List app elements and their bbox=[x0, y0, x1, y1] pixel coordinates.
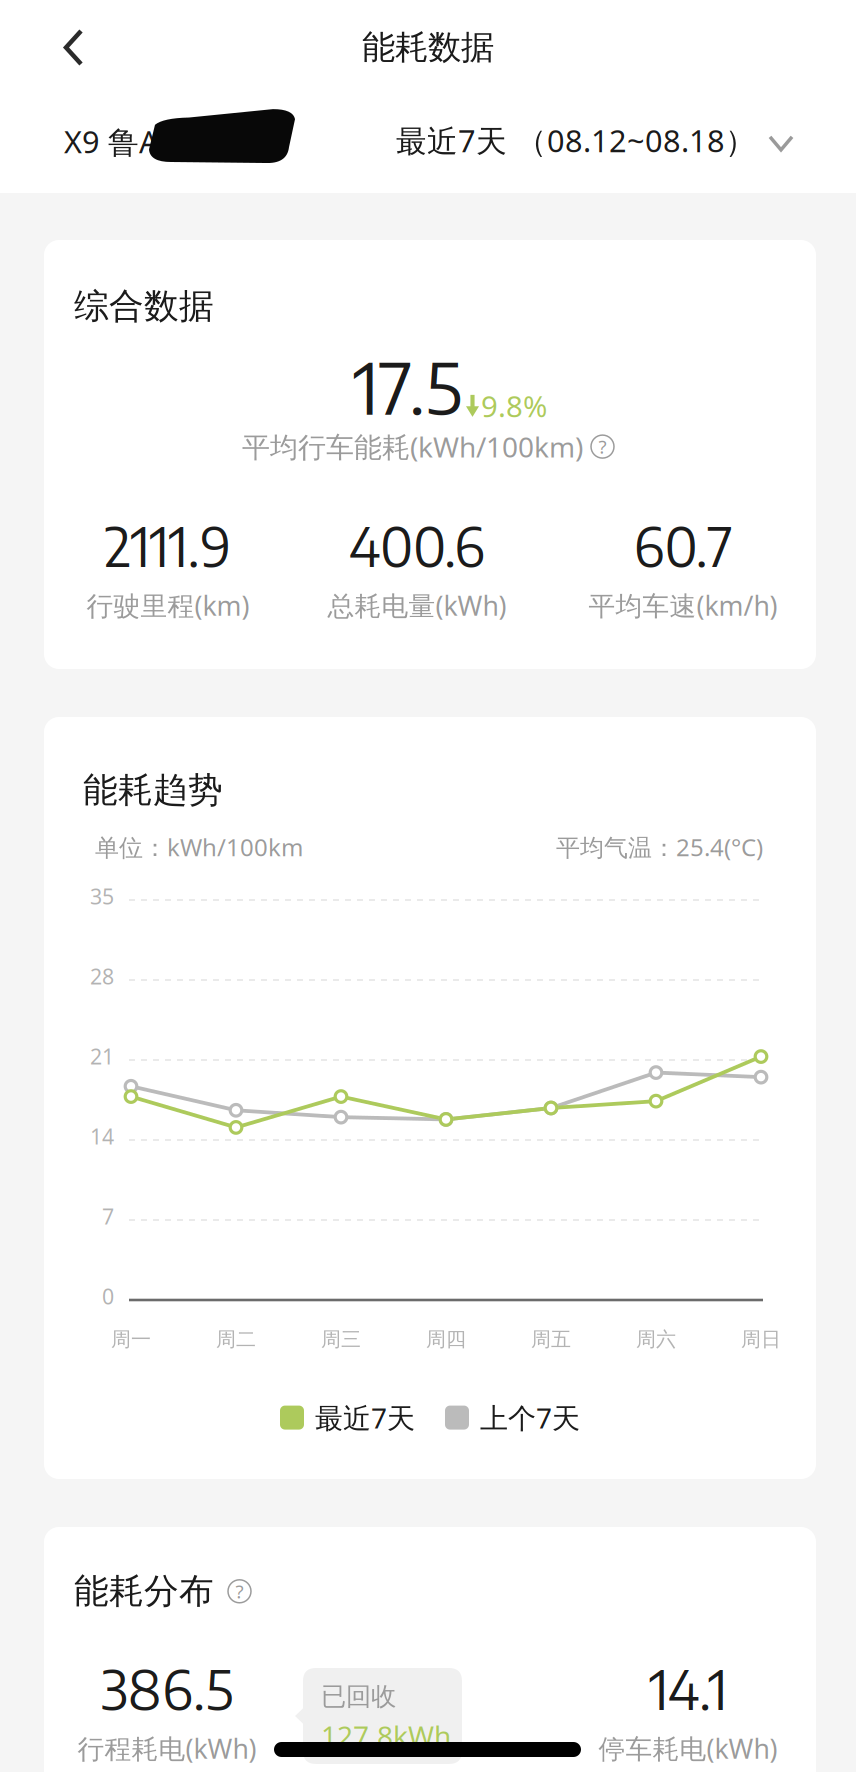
staticText: 能耗数据 bbox=[362, 27, 494, 68]
button[interactable]: 返回 bbox=[48, 14, 99, 81]
staticText: 单位：kWh/100km bbox=[95, 831, 303, 863]
staticText: 周四 bbox=[426, 1327, 466, 1352]
staticText: 周五 bbox=[531, 1327, 571, 1352]
staticText: 9.8% bbox=[481, 386, 547, 425]
staticText: 7 bbox=[102, 1202, 114, 1230]
button[interactable]: 最近7天 （08.12~08.18） bbox=[396, 106, 792, 175]
staticText: 28 bbox=[90, 962, 114, 990]
staticText: 周六 bbox=[636, 1327, 676, 1352]
staticText: 周三 bbox=[321, 1327, 361, 1352]
staticText: 综合数据 bbox=[74, 285, 214, 328]
staticText: 21 bbox=[90, 1042, 114, 1070]
staticText: 0 bbox=[102, 1282, 114, 1310]
staticText: 400.6 bbox=[349, 512, 485, 579]
staticText: 17.5 bbox=[353, 342, 462, 430]
staticText: 行驶里程(km) bbox=[86, 588, 249, 623]
staticText: 总耗电量(kWh) bbox=[327, 588, 506, 623]
staticText: 平均行车能耗(kWh/100km) bbox=[242, 428, 583, 465]
staticText: 已回收 bbox=[321, 1681, 396, 1712]
staticText: 2111.9 bbox=[104, 512, 231, 579]
staticText: 行程耗电(kWh) bbox=[77, 1731, 256, 1766]
staticText: 平均车速(km/h) bbox=[588, 588, 777, 623]
staticText: 能耗趋势 bbox=[83, 769, 223, 812]
staticText: ? bbox=[598, 434, 606, 459]
staticText: 上个7天 bbox=[480, 1399, 580, 1436]
staticText: 最近7天 （08.12~08.18） bbox=[396, 120, 756, 161]
staticText: 386.5 bbox=[101, 1655, 233, 1722]
staticText: 14.1 bbox=[649, 1655, 727, 1722]
staticText: 周一 bbox=[111, 1327, 151, 1352]
staticText: 周日 bbox=[741, 1327, 781, 1352]
staticText: 60.7 bbox=[633, 512, 732, 579]
button[interactable]: X9 鲁A bbox=[50, 108, 300, 166]
staticText: 周二 bbox=[216, 1327, 256, 1352]
staticText: 127.8kWh bbox=[321, 1717, 451, 1754]
staticText: 14 bbox=[90, 1122, 114, 1150]
staticText: 能耗分布 bbox=[74, 1570, 214, 1613]
staticText: 最近7天 bbox=[315, 1399, 415, 1436]
staticText: X9 鲁A bbox=[64, 121, 159, 162]
staticText: 平均气温：25.4(°C) bbox=[556, 831, 763, 863]
staticText: ? bbox=[235, 1579, 243, 1604]
staticText: 35 bbox=[90, 882, 114, 910]
staticText: 停车耗电(kWh) bbox=[598, 1731, 777, 1766]
